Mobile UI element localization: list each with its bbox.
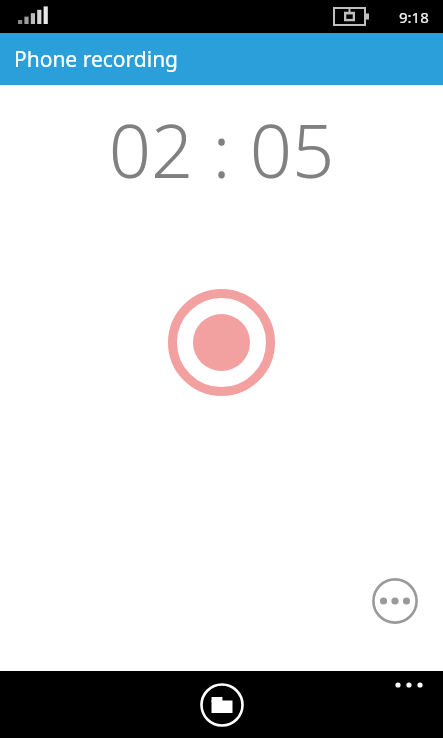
button[interactable]: More — [389, 671, 429, 699]
button[interactable]: Phone recording — [0, 33, 443, 85]
button[interactable]: More options — [372, 578, 418, 624]
staticText: Phone recording — [14, 45, 179, 74]
staticText: 9:18 — [399, 7, 429, 27]
button[interactable]: Recordings folder — [200, 683, 244, 727]
button[interactable]: Record — [168, 289, 275, 396]
staticText: 02 : 05 — [0, 99, 443, 200]
